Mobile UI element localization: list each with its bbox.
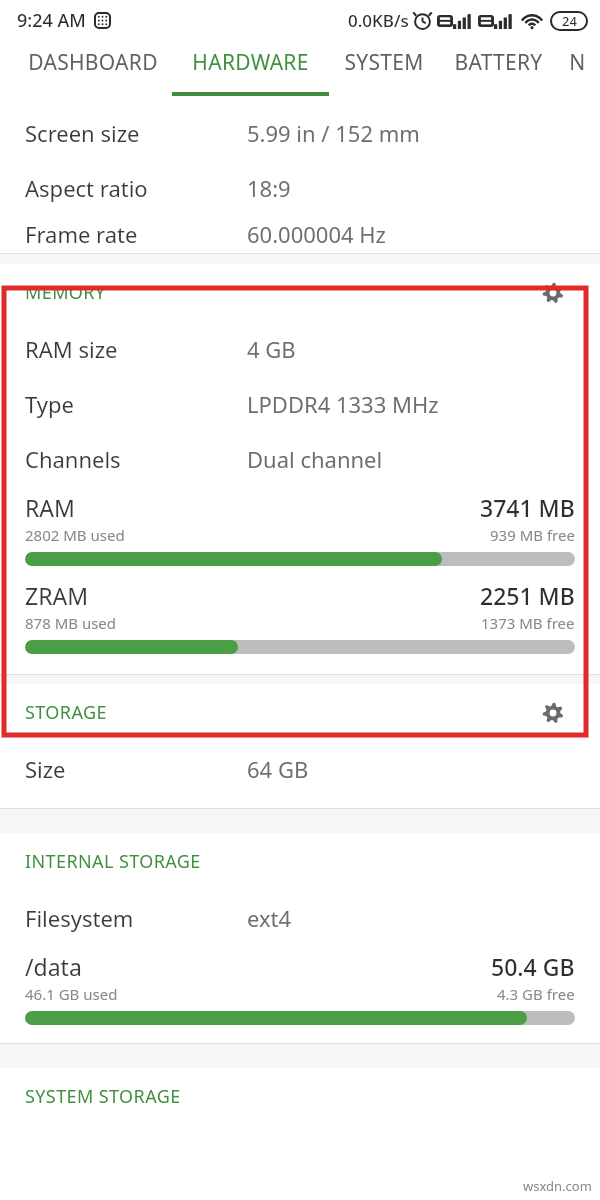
button[interactable]: Filesystem [0,890,600,945]
staticText: 4.3 GB free [497,984,575,1004]
staticText: RAM [25,492,75,523]
staticText: STORAGE [25,700,107,725]
button[interactable]: HARDWARE [172,40,329,97]
staticText: Size [25,754,66,784]
staticText: 2251 MB [480,580,575,611]
staticText: /data [25,951,82,982]
staticText: 24 [562,12,577,30]
staticText: Dual channel [247,444,383,474]
staticText: SYSTEM STORAGE [25,1084,181,1109]
staticText: 939 MB free [490,525,575,545]
button[interactable]: Settings for STORAGE [538,698,568,728]
button[interactable]: DASHBOARD [14,40,172,97]
staticText: HARDWARE [192,48,309,77]
staticText: 1373 MB free [481,613,575,633]
staticText: BATTERY [454,48,543,77]
button[interactable]: Channels [0,431,600,486]
staticText: 878 MB used [25,613,117,633]
button[interactable]: Type [0,376,600,431]
staticText: 5.99 in / 152 mm [247,118,420,148]
staticText: Frame rate [25,219,138,249]
staticText: Channels [25,444,121,474]
staticText: 4 GB [247,334,296,364]
staticText: Type [25,389,74,419]
staticText: 9:24 AM [17,8,86,33]
button[interactable]: Size [0,741,600,796]
staticText: 2802 MB used [25,525,125,545]
staticText: Screen size [25,118,140,148]
staticText: 60.000004 Hz [247,219,386,249]
staticText: ZRAM [25,580,89,611]
button[interactable]: BATTERY [439,40,557,97]
staticText: RAM size [25,334,118,364]
staticText: Aspect ratio [25,173,148,203]
button[interactable]: SYSTEM [329,40,439,97]
button[interactable]: ZRAM [0,580,600,654]
staticText: DASHBOARD [28,48,158,77]
staticText: 64 GB [247,754,309,784]
staticText: ext4 [247,903,292,933]
button[interactable]: Frame rate [0,215,600,253]
button[interactable]: RAM size [0,321,600,376]
staticText: 3741 MB [480,492,575,523]
staticText: Filesystem [25,903,134,933]
button[interactable]: Aspect ratio [0,160,600,215]
staticText: MEMORY [25,280,106,305]
staticText: 18:9 [247,173,291,203]
staticText: LPDDR4 1333 MHz [247,389,439,419]
staticText: 0.0KB/s [348,9,409,32]
button[interactable]: /data [0,951,600,1025]
button[interactable]: Screen size [0,105,600,160]
staticText: INTERNAL STORAGE [25,849,201,874]
button[interactable]: RAM [0,492,600,566]
button[interactable]: Settings for MEMORY [538,278,568,308]
staticText: wsxdn.com [523,1177,592,1195]
staticText: SYSTEM [344,48,424,77]
staticText: 46.1 GB used [25,984,118,1004]
staticText: 50.4 GB [491,951,575,982]
button[interactable]: N [557,40,597,97]
staticText: N [569,48,586,77]
